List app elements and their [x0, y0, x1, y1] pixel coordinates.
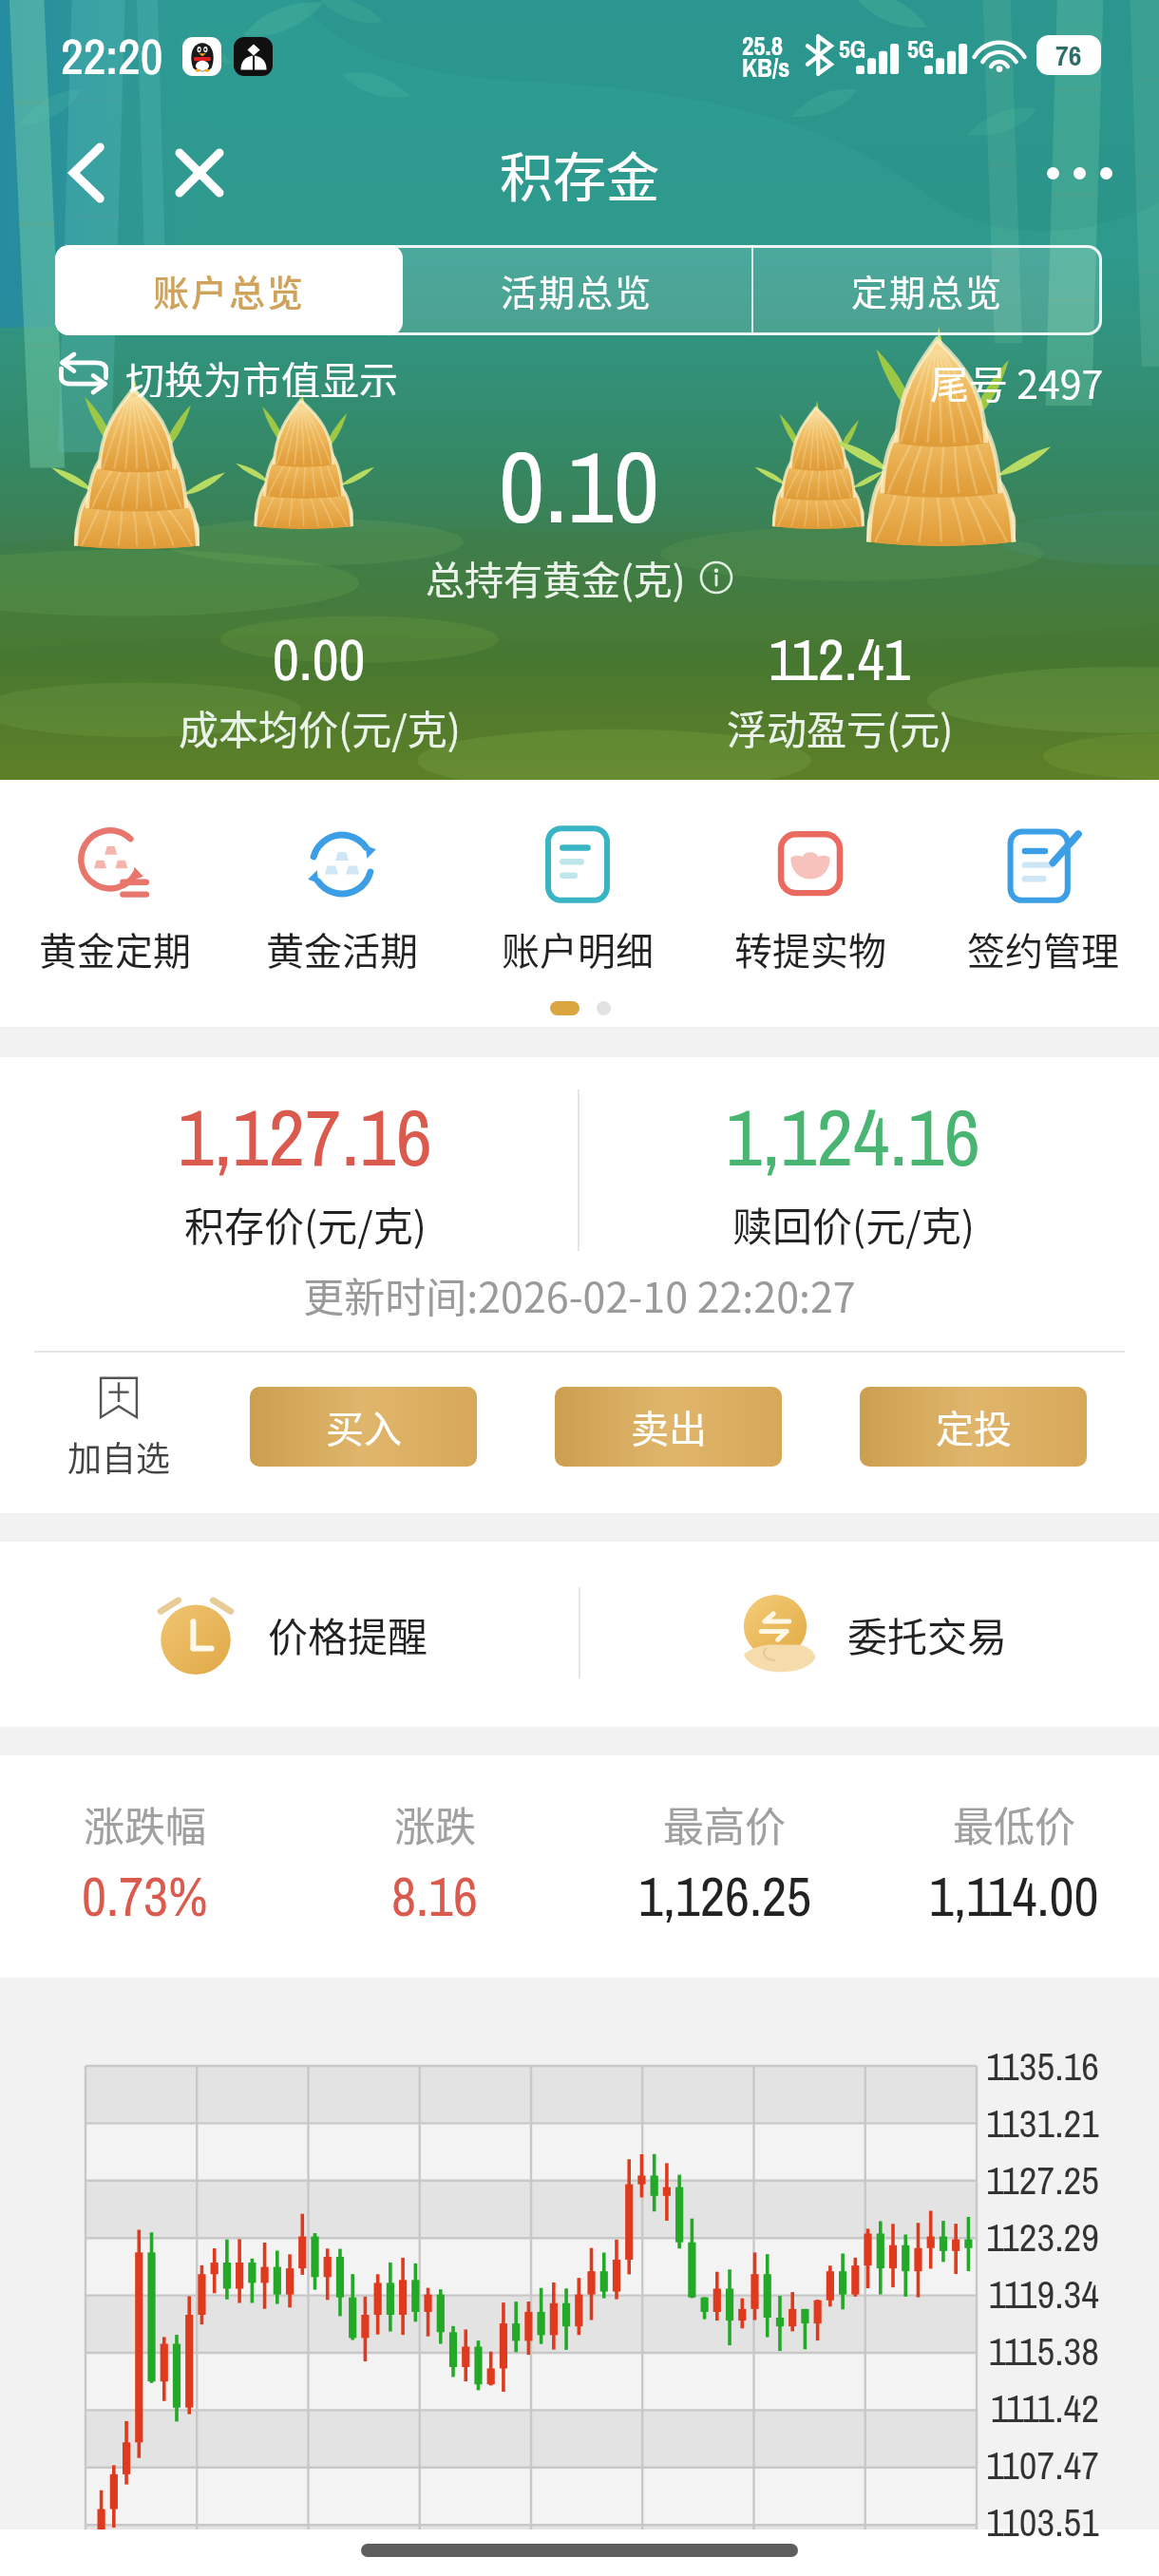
staticText: 1123.29 — [985, 2211, 1099, 2263]
staticText: 赎回价(元/克) — [732, 1195, 975, 1253]
button[interactable]: 黄金定期 — [10, 824, 219, 976]
staticText: 活期总览 — [501, 264, 654, 316]
staticText: 切换为市值显示 — [125, 350, 398, 397]
staticText: 更新时间:2026-02-10 22:20:27 — [303, 1265, 856, 1324]
button[interactable]: 账户明细 — [473, 824, 682, 976]
staticText: 1111.42 — [990, 2382, 1099, 2434]
staticText: 1127.25 — [985, 2154, 1099, 2207]
button[interactable]: 委托交易 — [579, 1542, 1159, 1727]
staticText: 1,126.25 — [638, 1860, 811, 1933]
staticText: 1119.34 — [988, 2268, 1099, 2320]
button[interactable]: 账户总览 — [55, 245, 403, 335]
button[interactable]: 转提实物 — [706, 824, 915, 976]
staticText: 涨跌幅 — [84, 1794, 206, 1853]
staticText: 1,127.16 — [178, 1083, 433, 1190]
staticText: 1107.47 — [985, 2439, 1099, 2491]
button[interactable]: 定期总览 — [753, 245, 1102, 335]
staticText: 25.8 KB/s — [742, 28, 790, 85]
staticText: 8.16 — [391, 1860, 478, 1933]
staticText: 账户明细 — [502, 921, 654, 976]
button[interactable]: Close — [169, 142, 230, 203]
staticText: 最低价 — [953, 1794, 1075, 1853]
staticText: 积存价(元/克) — [184, 1195, 427, 1253]
button[interactable]: 切换为市值显示 — [57, 350, 398, 397]
staticText: 76 — [1055, 36, 1082, 74]
staticText: 黄金定期 — [39, 921, 191, 976]
staticText: 价格提醒 — [268, 1605, 428, 1663]
staticText: 1103.51 — [985, 2496, 1099, 2548]
staticText: 总持有黄金(克) — [426, 549, 686, 605]
staticText: 加自选 — [67, 1431, 171, 1481]
button[interactable]: 卖出 — [555, 1387, 782, 1467]
staticText: 5G — [839, 32, 866, 66]
staticText: 买入 — [326, 1399, 402, 1454]
button[interactable]: 定投 — [860, 1387, 1087, 1467]
staticText: 成本均价(元/克) — [179, 698, 461, 756]
button[interactable]: Back — [57, 143, 116, 202]
button[interactable]: 价格提醒 — [0, 1542, 579, 1727]
staticText: 涨跌 — [394, 1794, 476, 1853]
button[interactable]: More options — [1041, 149, 1117, 197]
staticText: 112.41 — [769, 620, 911, 698]
staticText: 委托交易 — [847, 1605, 1008, 1663]
button[interactable]: 黄金活期 — [237, 824, 446, 976]
staticText: 尾号 2497 — [930, 353, 1104, 409]
staticText: 转提实物 — [734, 921, 886, 976]
staticText: 1115.38 — [988, 2325, 1099, 2377]
button[interactable]: 签约管理 — [939, 824, 1148, 976]
staticText: 定投 — [936, 1399, 1012, 1454]
staticText: 卖出 — [631, 1399, 707, 1454]
button[interactable]: 买入 — [250, 1387, 477, 1467]
staticText: 1,124.16 — [726, 1083, 981, 1190]
staticText: 1135.16 — [985, 2040, 1099, 2093]
button[interactable]: Info — [699, 560, 733, 595]
staticText: 定期总览 — [851, 264, 1004, 316]
button[interactable]: 活期总览 — [403, 245, 751, 335]
staticText: 签约管理 — [967, 921, 1119, 976]
button[interactable]: 加自选 — [57, 1376, 180, 1481]
staticText: 1131.21 — [985, 2097, 1099, 2150]
staticText: 黄金活期 — [266, 921, 418, 976]
staticText: 5G — [907, 32, 935, 66]
staticText: 最高价 — [663, 1794, 786, 1853]
staticText: 0.00 — [273, 620, 366, 698]
staticText: 账户总览 — [153, 264, 306, 316]
staticText: 0.73% — [82, 1860, 208, 1933]
staticText: 22:20 — [61, 23, 163, 89]
staticText: 0.10 — [499, 418, 660, 554]
staticText: 浮动盈亏(元) — [727, 698, 954, 756]
staticText: 1,114.00 — [929, 1860, 1099, 1933]
staticText: 积存金 — [500, 135, 659, 212]
